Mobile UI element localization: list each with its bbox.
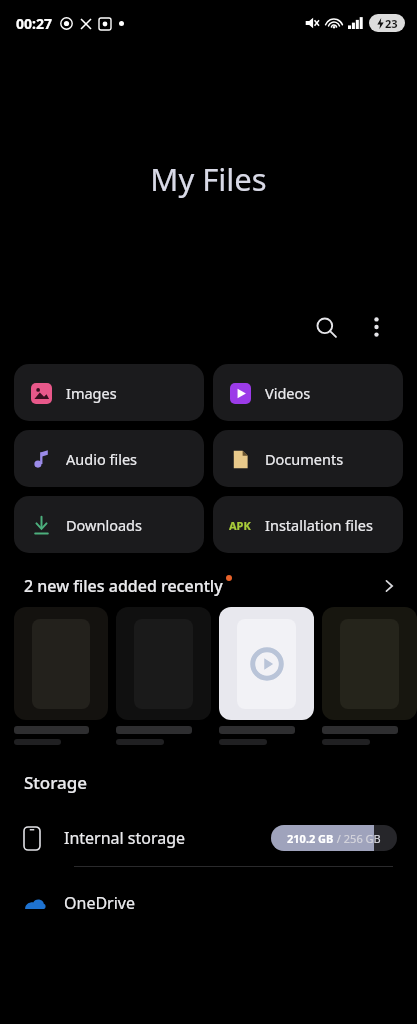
button[interactable]: Search xyxy=(303,304,349,350)
staticText: OneDrive xyxy=(64,892,135,914)
button[interactable]: Audio files xyxy=(14,430,204,487)
button[interactable]: Images xyxy=(14,364,204,421)
staticText: Audio files xyxy=(66,449,138,469)
staticText: 23 xyxy=(385,16,398,31)
button[interactable] xyxy=(322,607,417,745)
button[interactable]: APK xyxy=(213,496,403,553)
staticText: / 256 GB xyxy=(334,831,381,846)
staticText: 210.2 GB xyxy=(287,831,334,846)
button[interactable]: Internal storage xyxy=(0,816,417,860)
staticText: Images xyxy=(66,383,117,403)
button[interactable]: 2 new files added recently xyxy=(0,575,417,597)
staticText: Installation files xyxy=(265,515,373,535)
staticText: Videos xyxy=(265,383,311,403)
staticText: APK xyxy=(229,518,251,533)
staticText: Storage xyxy=(24,771,88,794)
button[interactable] xyxy=(219,607,314,745)
button[interactable] xyxy=(14,607,108,745)
button[interactable]: Downloads xyxy=(14,496,204,553)
staticText: Documents xyxy=(265,449,344,469)
staticText: Downloads xyxy=(66,515,142,535)
staticText: 00:27 xyxy=(16,14,52,33)
staticText: Internal storage xyxy=(64,827,186,849)
button[interactable]: OneDrive xyxy=(0,881,417,925)
button[interactable]: Documents xyxy=(213,430,403,487)
staticText: 2 new files added recently xyxy=(24,575,223,597)
button[interactable] xyxy=(116,607,211,745)
button[interactable]: More options xyxy=(355,306,397,348)
staticText: My Files xyxy=(0,158,417,200)
button[interactable]: Videos xyxy=(213,364,403,421)
